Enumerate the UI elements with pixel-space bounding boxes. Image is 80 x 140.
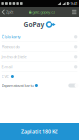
- button[interactable]: Číslo karty: [2, 32, 77, 42]
- staticText: 9:41: [71, 1, 78, 6]
- staticText: Zaplatit 180 Kč: [21, 128, 58, 135]
- staticText: GoPay: [23, 20, 44, 29]
- button[interactable]: Zaplatit 180 Kč: [0, 123, 79, 140]
- button[interactable]: CVC: [2, 72, 77, 81]
- staticText: Platnost do: [2, 44, 20, 49]
- staticText: Jméno držitele: [2, 54, 27, 59]
- button[interactable]: Menu: [69, 7, 79, 17]
- staticText: gate.gopay.cz: [32, 9, 55, 15]
- button[interactable]: Jméno držitele: [2, 52, 77, 62]
- button[interactable]: Zpět: [0, 7, 15, 17]
- button[interactable]: E-mail: [2, 62, 77, 72]
- button[interactable]: Platnost do: [2, 42, 77, 52]
- staticText: Číslo karty: [2, 34, 21, 39]
- staticText: Zapamatovat kartu: [2, 83, 34, 88]
- staticText: E-mail: [2, 64, 13, 69]
- button[interactable]: Zapamatovat kartu: [2, 81, 77, 90]
- staticText: Zpět: [6, 9, 13, 15]
- staticText: CVC: [2, 74, 10, 79]
